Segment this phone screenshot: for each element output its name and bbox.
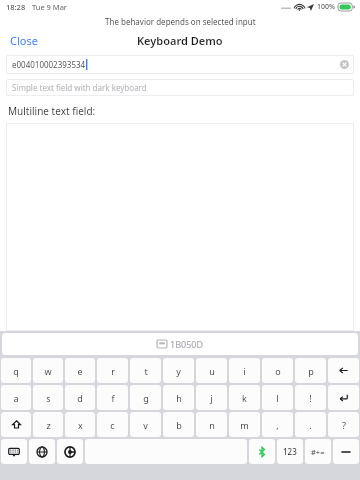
staticText: e004010002393534	[12, 59, 86, 70]
button[interactable]: .	[295, 412, 326, 437]
staticText: Multiline text field:	[8, 104, 96, 118]
staticText: Close	[10, 33, 38, 47]
staticText: Simple text field with dark keyboard	[12, 82, 147, 93]
staticText: e	[77, 365, 83, 377]
staticText: 123	[283, 446, 297, 457]
button[interactable]: 1B050D	[2, 333, 358, 355]
button[interactable]: Return	[328, 385, 359, 410]
button[interactable]: #+=	[305, 439, 331, 464]
button[interactable]: j	[196, 385, 227, 410]
staticText: v	[143, 419, 148, 431]
staticText: 100%	[317, 2, 335, 12]
staticText: #+=	[311, 447, 325, 457]
button[interactable]: p	[295, 358, 326, 383]
staticText: ?	[342, 419, 346, 431]
staticText: h	[176, 392, 182, 404]
button[interactable]: s	[33, 385, 63, 410]
staticText: k	[242, 392, 247, 404]
staticText: m	[240, 419, 249, 431]
button[interactable]: m	[229, 412, 260, 437]
button[interactable]: w	[33, 358, 63, 383]
button[interactable]: Keyboard settings	[57, 439, 83, 464]
button[interactable]: z	[33, 412, 63, 437]
button[interactable]: i	[229, 358, 260, 383]
button[interactable]: Bluetooth	[249, 439, 275, 464]
button[interactable]: Hide keyboard	[1, 439, 27, 464]
staticText: c	[110, 419, 115, 431]
button[interactable]: c	[97, 412, 128, 437]
button[interactable]: Clear text	[340, 60, 349, 69]
button[interactable]: o	[262, 358, 293, 383]
button[interactable]: Backspace	[328, 358, 359, 383]
button[interactable]: e004010002393534	[6, 55, 354, 74]
staticText: Tue 9 Mar	[32, 2, 67, 12]
staticText: f	[111, 392, 115, 404]
staticText: x	[78, 419, 83, 431]
staticText: .	[309, 419, 312, 431]
button[interactable]: a	[1, 385, 31, 410]
staticText: w	[44, 365, 52, 377]
button[interactable]: ,	[262, 412, 293, 437]
staticText: 18:28	[6, 2, 26, 12]
button[interactable]: b	[163, 412, 194, 437]
button[interactable]: q	[1, 358, 31, 383]
button[interactable]: ?	[328, 412, 359, 437]
staticText: p	[308, 365, 314, 377]
button[interactable]: g	[130, 385, 161, 410]
staticText: z	[46, 419, 51, 431]
staticText: Keyboard Demo	[137, 33, 223, 48]
button[interactable]: !	[295, 385, 326, 410]
button[interactable]: t	[130, 358, 161, 383]
staticText: !	[309, 392, 312, 404]
button[interactable]: y	[163, 358, 194, 383]
staticText: j	[210, 392, 213, 404]
staticText: ,	[276, 419, 279, 431]
staticText: s	[46, 392, 51, 404]
button[interactable]: l	[262, 385, 293, 410]
button[interactable]: Shift	[1, 412, 31, 437]
button[interactable]: Simple text field with dark keyboard	[6, 79, 354, 96]
staticText: n	[209, 419, 215, 431]
staticText: o	[275, 365, 281, 377]
button[interactable]: r	[97, 358, 128, 383]
button[interactable]: Dismiss keyboard	[333, 439, 359, 464]
staticText: 1B050D	[170, 338, 204, 350]
staticText: y	[176, 365, 181, 377]
staticText: The behavior depends on selected input	[105, 16, 256, 27]
button[interactable]: Change language	[29, 439, 55, 464]
button[interactable]: f	[97, 385, 128, 410]
button[interactable]: u	[196, 358, 227, 383]
button[interactable]: e	[65, 358, 95, 383]
button[interactable]: k	[229, 385, 260, 410]
button[interactable]: n	[196, 412, 227, 437]
staticText: i	[243, 365, 246, 377]
staticText: r	[111, 365, 115, 377]
button[interactable]: 123	[277, 439, 303, 464]
staticText: u	[209, 365, 215, 377]
staticText: q	[13, 365, 19, 377]
button[interactable]: v	[130, 412, 161, 437]
staticText: l	[276, 392, 279, 404]
staticText: g	[143, 392, 149, 404]
button[interactable]: x	[65, 412, 95, 437]
button[interactable]: Close	[0, 29, 48, 51]
staticText: b	[176, 419, 182, 431]
staticText: t	[144, 365, 148, 377]
button[interactable]: d	[65, 385, 95, 410]
staticText: d	[77, 392, 83, 404]
staticText: a	[13, 392, 19, 404]
button[interactable]: h	[163, 385, 194, 410]
